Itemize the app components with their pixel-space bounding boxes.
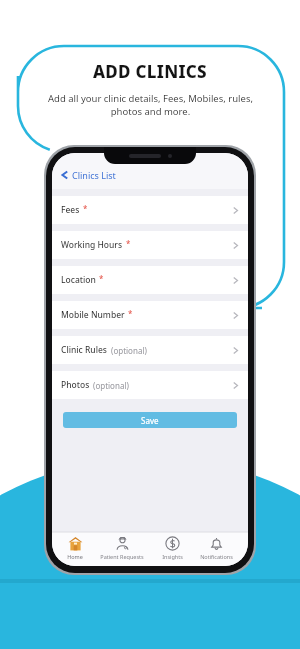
- button[interactable]: Mobile Number: [52, 301, 248, 329]
- button[interactable]: Insights: [160, 536, 185, 560]
- button[interactable]: Fees: [52, 196, 248, 224]
- staticText: Clinic Rules: [61, 344, 108, 356]
- staticText: Mobile Number: [61, 309, 125, 321]
- button[interactable]: Photos: [52, 371, 248, 399]
- button[interactable]: Location: [52, 266, 248, 294]
- staticText: *: [126, 238, 131, 249]
- staticText: *: [83, 203, 88, 214]
- staticText: *: [128, 308, 133, 319]
- button[interactable]: Home: [65, 536, 85, 560]
- button[interactable]: Clinic Rules: [52, 336, 248, 364]
- staticText: Notifications: [200, 553, 233, 560]
- staticText: ADD CLINICS: [93, 60, 207, 83]
- staticText: Insights: [162, 553, 183, 560]
- staticText: Add all your clinic details, Fees, Mobil…: [48, 92, 253, 118]
- staticText: Clinics List: [72, 169, 116, 181]
- button[interactable]: Patient Requests: [98, 536, 146, 560]
- button[interactable]: Save: [63, 412, 237, 428]
- staticText: Save: [141, 415, 159, 426]
- button[interactable]: Notifications: [198, 536, 235, 560]
- staticText: Location: [61, 274, 96, 286]
- button[interactable]: Working Hours: [52, 231, 248, 259]
- staticText: Working Hours: [61, 239, 123, 251]
- staticText: Photos: [61, 379, 90, 391]
- staticText: (optional): [93, 380, 129, 391]
- staticText: Fees: [61, 204, 80, 216]
- staticText: (optional): [111, 345, 147, 356]
- staticText: Patient Requests: [100, 553, 144, 560]
- staticText: Home: [67, 553, 83, 560]
- button[interactable]: Clinics List: [59, 167, 118, 183]
- staticText: *: [99, 273, 104, 284]
